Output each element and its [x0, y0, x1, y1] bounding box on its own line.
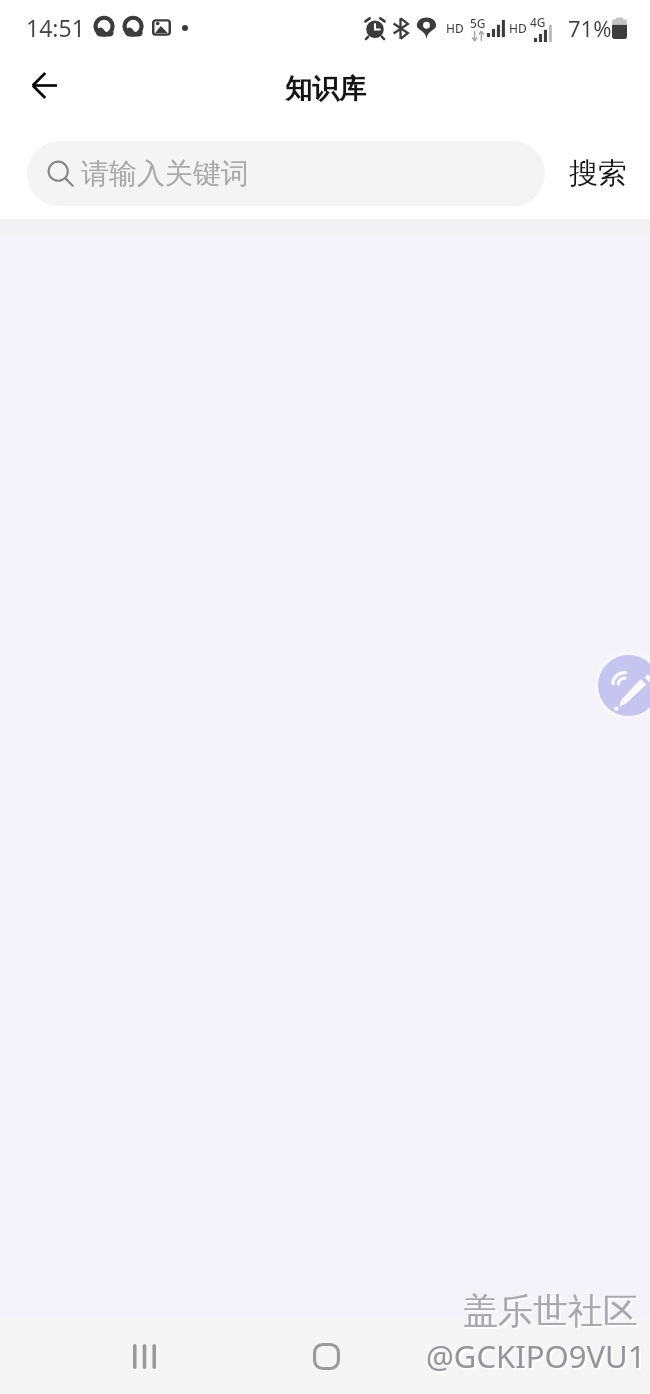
staticText: 盖乐世社区	[463, 1289, 638, 1333]
staticText: @GCKIPO9VU1	[426, 1335, 646, 1377]
staticText: 5G	[470, 15, 486, 31]
button[interactable]: Write note	[598, 655, 650, 716]
staticText: HD	[509, 20, 527, 36]
staticText: 71%	[568, 13, 612, 43]
button[interactable]: 搜索	[565, 145, 631, 202]
staticText: 知识库	[285, 72, 366, 106]
staticText: 盖乐世社区	[465, 1291, 640, 1335]
button[interactable]: 请输入关键词	[27, 141, 545, 206]
staticText: HD	[446, 20, 464, 36]
staticText: 14:51	[26, 12, 85, 43]
staticText: 请输入关键词	[81, 156, 249, 191]
staticText: @GCKIPO9VU1	[428, 1337, 648, 1379]
button[interactable]: Recent apps	[110, 1322, 178, 1390]
staticText: 4G	[530, 14, 546, 30]
button[interactable]: Home	[292, 1322, 360, 1390]
button[interactable]: Back	[474, 1322, 542, 1390]
button[interactable]: Back	[16, 57, 73, 114]
staticText: 搜索	[569, 155, 627, 192]
